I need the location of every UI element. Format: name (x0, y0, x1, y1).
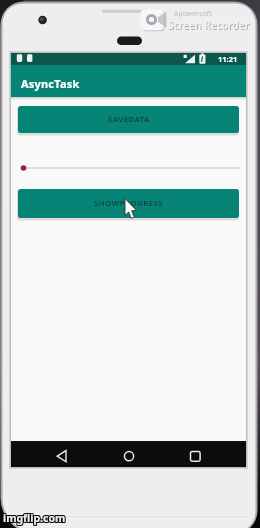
button[interactable]: SAVEDATA (18, 106, 239, 133)
button[interactable]: SHOWPROGRESS (18, 189, 239, 218)
staticText: imgflip.com (2, 510, 65, 524)
button[interactable] (53, 447, 71, 465)
staticText: SAVEDATA (108, 114, 150, 125)
button[interactable] (120, 447, 138, 465)
staticText: imgflip.com (2, 511, 65, 525)
staticText: imgflip.com (3, 510, 66, 524)
staticText: SHOWPROGRESS (94, 198, 164, 209)
staticText: Apowersoft (174, 9, 213, 18)
staticText: imgflip.com (3, 511, 66, 525)
staticText: 11:21 (218, 54, 238, 64)
staticText: imgflip.com (4, 512, 67, 526)
button[interactable] (186, 447, 204, 465)
staticText: imgflip.com (3, 512, 66, 526)
staticText: Screen Recorder (168, 18, 250, 32)
button[interactable] (18, 160, 240, 176)
staticText: imgflip.com (4, 510, 67, 524)
staticText: imgflip.com (4, 511, 67, 525)
staticText: Screen Recorder (169, 19, 251, 33)
staticText: AsyncTask (21, 76, 80, 91)
staticText: imgflip.com (2, 512, 65, 526)
